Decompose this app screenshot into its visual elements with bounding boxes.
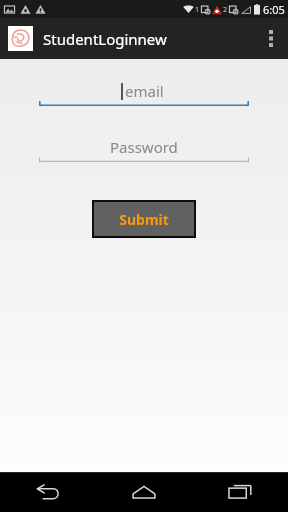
staticText: email — [125, 81, 164, 101]
button[interactable]: More options — [254, 18, 288, 59]
button[interactable]: Email input — [39, 75, 249, 106]
staticText: Submit — [119, 210, 169, 229]
staticText: 1 — [195, 5, 200, 15]
button[interactable]: Back — [0, 472, 96, 512]
button[interactable]: Password input — [39, 131, 249, 162]
staticText: 2 — [223, 5, 228, 15]
staticText: 6:05 — [263, 2, 285, 17]
button[interactable]: Home — [96, 472, 192, 512]
staticText: Password — [110, 137, 178, 157]
staticText: StudentLoginnew — [43, 29, 167, 49]
button[interactable]: Submit — [94, 202, 194, 236]
other: App icon — [8, 26, 33, 51]
button[interactable]: Recent apps — [192, 472, 288, 512]
